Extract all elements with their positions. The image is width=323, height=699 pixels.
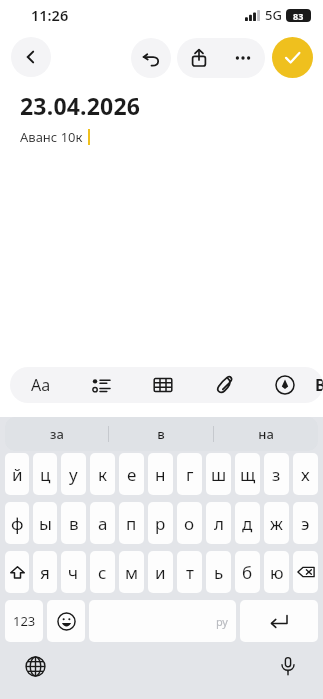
staticText: 23.04.2026 xyxy=(20,90,141,121)
button[interactable]: Attach xyxy=(193,367,254,403)
button[interactable]: Shift xyxy=(5,551,29,593)
staticText: ч xyxy=(68,561,79,584)
button[interactable]: и xyxy=(148,551,173,593)
staticText: л xyxy=(214,512,224,535)
staticText: ь xyxy=(214,561,224,584)
button[interactable]: з xyxy=(264,453,289,495)
staticText: щ xyxy=(240,463,256,486)
button[interactable]: Emoji xyxy=(47,600,85,642)
staticText: ж xyxy=(270,512,283,535)
button[interactable]: Share xyxy=(177,38,221,78)
staticText: с xyxy=(98,561,107,584)
staticText: в xyxy=(157,425,165,443)
button[interactable]: к xyxy=(90,453,115,495)
button[interactable]: т xyxy=(177,551,202,593)
staticText: з xyxy=(272,463,281,486)
staticText: т xyxy=(186,561,194,584)
staticText: о xyxy=(184,512,195,535)
button[interactable]: с xyxy=(90,551,115,593)
button[interactable]: э xyxy=(293,502,318,544)
button[interactable]: в xyxy=(61,502,86,544)
button[interactable]: Voice input xyxy=(272,650,304,682)
staticText: ш xyxy=(211,463,227,486)
staticText: Аванс 10к xyxy=(20,128,83,146)
staticText: Aa xyxy=(31,374,51,396)
staticText: 123 xyxy=(13,612,36,630)
staticText: р xyxy=(155,512,166,535)
button[interactable]: ф xyxy=(5,502,29,544)
staticText: д xyxy=(242,512,253,535)
button[interactable]: у xyxy=(61,453,86,495)
button[interactable]: Bold xyxy=(315,367,323,403)
button[interactable]: ы xyxy=(33,502,57,544)
button[interactable]: г xyxy=(177,453,202,495)
staticText: B xyxy=(315,374,323,396)
staticText: за xyxy=(50,425,64,443)
button[interactable]: е xyxy=(119,453,144,495)
button[interactable]: х xyxy=(293,453,318,495)
button[interactable]: ч xyxy=(61,551,86,593)
button[interactable]: о xyxy=(177,502,202,544)
staticText: ру xyxy=(216,614,228,629)
staticText: б xyxy=(242,561,253,584)
staticText: 11:26 xyxy=(31,5,69,25)
staticText: в xyxy=(69,512,79,535)
button[interactable]: ш xyxy=(206,453,231,495)
button[interactable]: Done xyxy=(272,37,313,78)
staticText: и xyxy=(155,561,166,584)
button[interactable]: More options xyxy=(221,38,265,78)
button[interactable]: Enter xyxy=(240,600,318,642)
staticText: х xyxy=(301,463,310,486)
button[interactable]: 123 xyxy=(5,600,43,642)
staticText: я xyxy=(40,561,50,584)
staticText: е xyxy=(127,463,137,486)
staticText: 83 xyxy=(293,10,304,22)
button[interactable]: Draw xyxy=(254,367,315,403)
button[interactable]: Undo xyxy=(131,38,171,78)
button[interactable]: Checklist xyxy=(71,367,132,403)
button[interactable]: Change keyboard xyxy=(19,650,51,682)
button[interactable]: щ xyxy=(235,453,260,495)
staticText: к xyxy=(98,463,108,486)
staticText: м xyxy=(125,561,139,584)
button[interactable]: м xyxy=(119,551,144,593)
button[interactable]: ю xyxy=(264,551,289,593)
button[interactable]: Backspace xyxy=(293,551,318,593)
button[interactable]: б xyxy=(235,551,260,593)
button[interactable]: на xyxy=(214,417,318,451)
staticText: й xyxy=(12,463,23,486)
staticText: на xyxy=(258,425,274,443)
staticText: 5G xyxy=(265,6,282,24)
button[interactable]: Back xyxy=(11,37,51,77)
button[interactable]: я xyxy=(33,551,57,593)
button[interactable]: д xyxy=(235,502,260,544)
staticText: э xyxy=(301,512,310,535)
staticText: ы xyxy=(39,512,52,535)
button[interactable]: за xyxy=(5,417,108,451)
button[interactable]: п xyxy=(119,502,144,544)
button[interactable]: Text style xyxy=(10,367,71,403)
button[interactable]: ж xyxy=(264,502,289,544)
button[interactable]: в xyxy=(109,417,213,451)
button[interactable]: ь xyxy=(206,551,231,593)
button[interactable]: Space xyxy=(89,600,236,642)
staticText: п xyxy=(126,512,137,535)
staticText: ц xyxy=(40,463,51,486)
button[interactable]: р xyxy=(148,502,173,544)
staticText: г xyxy=(186,463,194,486)
staticText: ю xyxy=(270,561,284,584)
staticText: а xyxy=(98,512,108,535)
button[interactable]: ц xyxy=(33,453,57,495)
button[interactable]: л xyxy=(206,502,231,544)
staticText: ф xyxy=(11,512,24,535)
button[interactable]: а xyxy=(90,502,115,544)
button[interactable]: Table xyxy=(132,367,193,403)
button[interactable]: й xyxy=(5,453,29,495)
button[interactable]: н xyxy=(148,453,173,495)
staticText: н xyxy=(155,463,166,486)
staticText: у xyxy=(69,463,78,486)
